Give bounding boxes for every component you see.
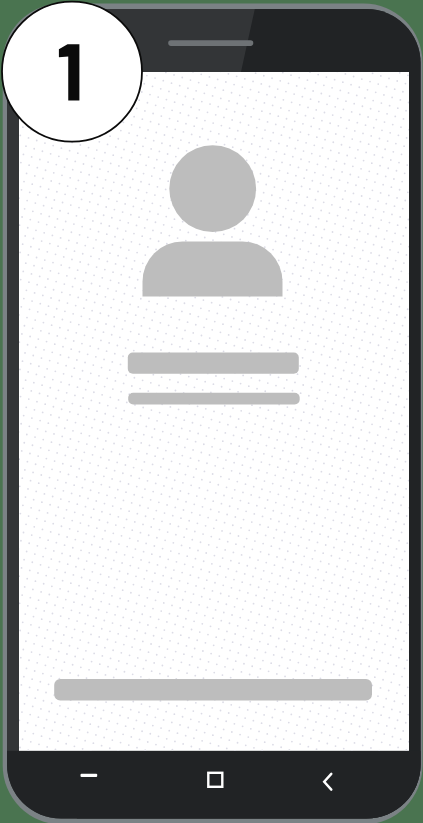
button[interactable]: Continue [54,679,372,701]
button[interactable]: Back [297,754,357,800]
button[interactable]: Home [185,754,245,800]
button[interactable]: Recent apps [60,754,120,800]
